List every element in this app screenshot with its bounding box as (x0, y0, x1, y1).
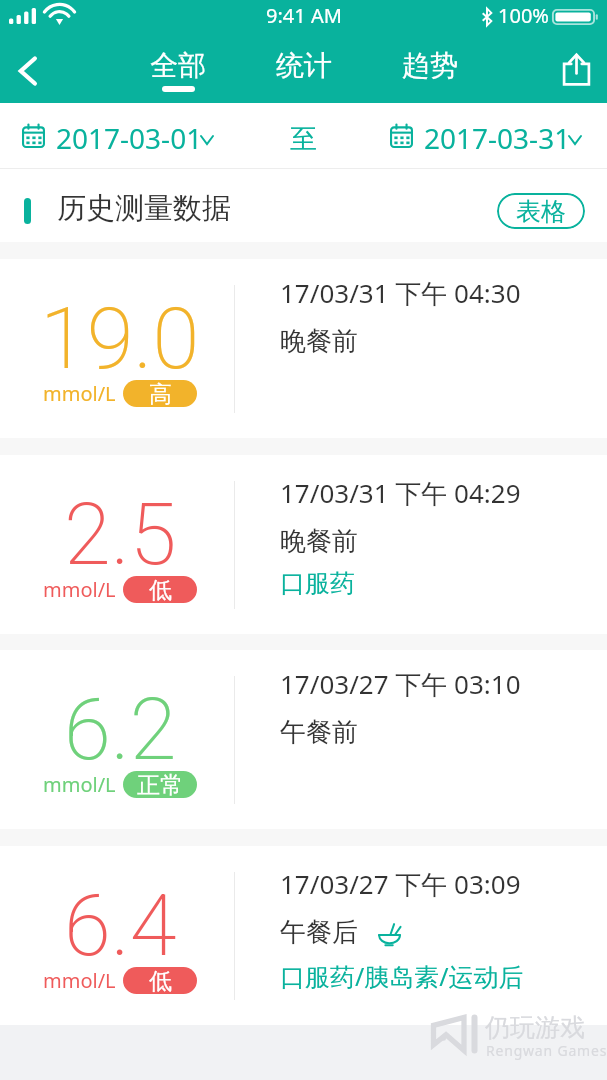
button[interactable]: 2017-03-01 (22, 111, 217, 161)
button[interactable]: 6.2 (0, 650, 607, 829)
button[interactable]: 6.4 (0, 846, 607, 1025)
staticText: mmol/L (43, 576, 116, 603)
staticText: mmol/L (43, 967, 116, 994)
button[interactable]: 趋势 (367, 38, 493, 103)
button[interactable]: 2017-03-31 (390, 111, 585, 161)
staticText: 低 (149, 967, 172, 994)
button[interactable]: 统计 (241, 38, 367, 103)
staticText: 19.0 (40, 289, 200, 389)
staticText: 2017-03-01 (56, 119, 203, 157)
staticText: 6.4 (64, 876, 177, 976)
staticText: 午餐后 (280, 916, 358, 949)
staticText: 午餐前 (280, 716, 358, 749)
button[interactable]: 口服药/胰岛素/运动后 (280, 959, 524, 993)
button[interactable]: 表格 (497, 193, 585, 229)
staticText: 趋势 (402, 48, 458, 83)
button[interactable]: 至 (290, 122, 317, 156)
button[interactable]: Share (545, 38, 607, 103)
staticText: 正常 (137, 771, 183, 798)
staticText: 历史测量数据 (57, 190, 231, 227)
staticText: 仍玩游戏 (485, 1012, 585, 1043)
staticText: 17/03/31 下午 04:30 (280, 275, 521, 311)
staticText: mmol/L (43, 771, 116, 798)
button[interactable]: 口服药 (280, 568, 355, 599)
staticText: 2.5 (64, 485, 177, 585)
staticText: 17/03/31 下午 04:29 (280, 475, 521, 511)
button[interactable]: 2.5 (0, 455, 607, 634)
staticText: mmol/L (43, 380, 116, 407)
staticText: Rengwan Games (486, 1041, 607, 1060)
button[interactable]: 19.0 (0, 259, 607, 438)
staticText: 17/03/27 下午 03:10 (280, 666, 521, 702)
staticText: 全部 (150, 48, 206, 83)
staticText: 2017-03-31 (424, 119, 571, 157)
staticText: 17/03/27 下午 03:09 (280, 866, 521, 902)
button[interactable]: 全部 (115, 38, 241, 103)
staticText: 表格 (516, 196, 566, 227)
staticText: 统计 (276, 48, 332, 83)
staticText: 高 (149, 380, 172, 407)
staticText: 6.2 (64, 680, 177, 780)
staticText: 9:41 AM (266, 2, 342, 29)
button[interactable]: Back (0, 38, 56, 103)
staticText: 晚餐前 (280, 525, 358, 558)
staticText: 晚餐前 (280, 325, 358, 358)
staticText: 低 (149, 576, 172, 603)
staticText: 100% (498, 2, 549, 29)
